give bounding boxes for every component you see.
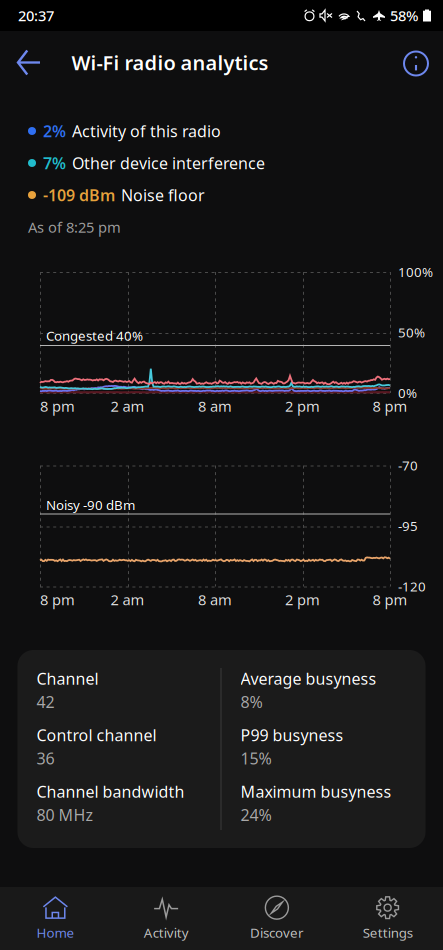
staticText: 42 xyxy=(36,691,54,712)
staticText: 2 am xyxy=(110,590,144,609)
staticText: 80 MHz xyxy=(36,804,93,825)
button[interactable]: Home xyxy=(0,887,111,950)
staticText: -120 xyxy=(398,577,426,595)
staticText: 100% xyxy=(398,263,433,281)
staticText: 7% xyxy=(43,152,66,174)
staticText: 36 xyxy=(36,748,54,769)
staticText: -109 dBm xyxy=(43,184,115,206)
staticText: Noisy -90 dBm xyxy=(46,496,135,514)
staticText: Other device interference xyxy=(72,152,265,174)
staticText: 2 am xyxy=(110,396,144,416)
staticText: -95 xyxy=(398,517,418,535)
staticText: P99 busyness xyxy=(240,724,343,746)
staticText: Activity of this radio xyxy=(72,120,221,142)
staticText: Activity xyxy=(144,924,189,941)
button[interactable]: Back xyxy=(5,37,49,87)
staticText: As of 8:25 pm xyxy=(28,217,121,237)
staticText: 8% xyxy=(240,691,262,712)
staticText: Channel xyxy=(36,668,98,689)
button[interactable]: Activity xyxy=(111,887,222,950)
staticText: 15% xyxy=(240,748,271,769)
staticText: 50% xyxy=(398,323,425,341)
staticText: Wi-Fi radio analytics xyxy=(71,49,268,76)
staticText: 8 pm xyxy=(40,396,75,416)
staticText: 8 am xyxy=(198,396,232,416)
staticText: Control channel xyxy=(36,724,156,746)
staticText: 8 pm xyxy=(372,590,407,609)
staticText: 24% xyxy=(240,804,271,825)
button[interactable]: Settings xyxy=(332,887,443,950)
staticText: Average busyness xyxy=(240,668,376,689)
staticText: Home xyxy=(36,924,74,941)
staticText: Congested 40% xyxy=(46,327,143,344)
staticText: Channel bandwidth xyxy=(36,781,184,802)
staticText: 58% xyxy=(390,6,418,25)
button[interactable]: Discover xyxy=(221,887,332,950)
staticText: 0% xyxy=(398,384,417,402)
staticText: 8 am xyxy=(198,590,232,609)
staticText: 2 pm xyxy=(285,396,320,416)
staticText: Discover xyxy=(250,924,304,941)
staticText: Settings xyxy=(363,924,413,941)
staticText: 2 pm xyxy=(285,590,320,609)
staticText: Noise floor xyxy=(121,184,205,206)
staticText: 2% xyxy=(43,120,66,142)
staticText: 8 pm xyxy=(40,590,75,609)
staticText: Maximum busyness xyxy=(240,781,391,802)
button[interactable]: Information xyxy=(394,37,438,87)
staticText: 8 pm xyxy=(372,396,407,416)
staticText: -70 xyxy=(398,456,418,474)
staticText: 20:37 xyxy=(18,6,54,25)
